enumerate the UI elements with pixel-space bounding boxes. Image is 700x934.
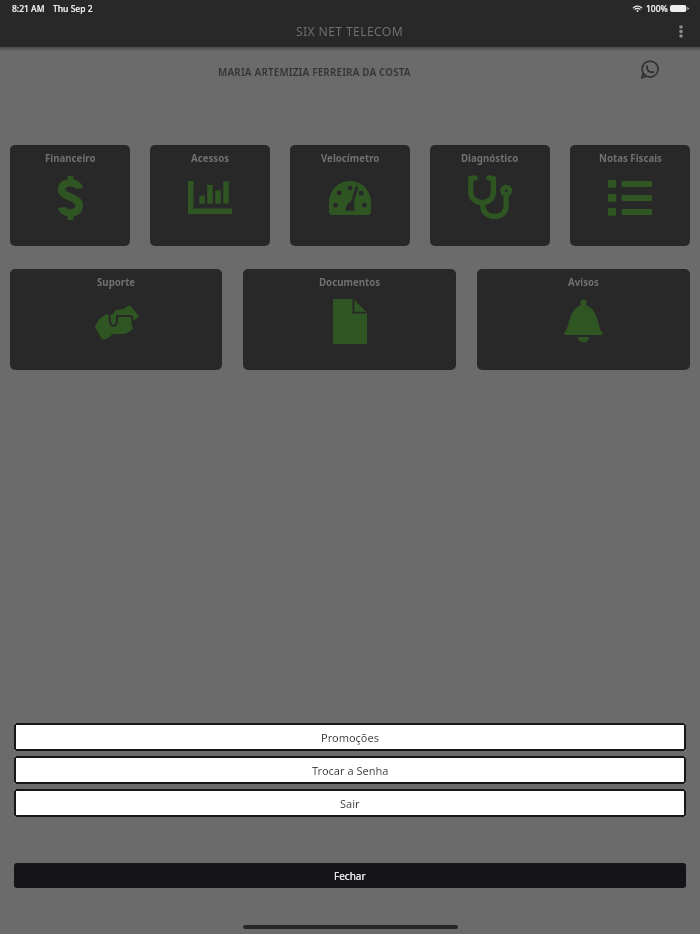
button[interactable]: WhatsApp — [635, 56, 662, 83]
staticText: Suporte — [97, 276, 136, 289]
button[interactable]: Velocímetro — [290, 145, 410, 246]
button[interactable]: More options — [668, 19, 693, 44]
staticText: Acessos — [191, 152, 230, 165]
staticText: Promoções — [321, 730, 379, 745]
staticText: 100% — [646, 3, 668, 15]
staticText: Avisos — [568, 276, 599, 289]
staticText: Documentos — [319, 276, 381, 289]
button[interactable]: Sair — [14, 789, 686, 817]
staticText: 8:21 AM — [12, 3, 45, 15]
button[interactable]: Suporte — [10, 269, 222, 370]
button[interactable]: Documentos — [243, 269, 456, 370]
staticText: Financeiro — [45, 152, 96, 165]
button[interactable]: Avisos — [477, 269, 690, 370]
button[interactable]: Promoções — [14, 723, 686, 751]
button[interactable]: Diagnóstico — [430, 145, 550, 246]
staticText: SIX NET TELECOM — [296, 23, 404, 40]
button[interactable]: Fechar — [14, 863, 686, 888]
staticText: MARIA ARTEMIZIA FERREIRA DA COSTA — [218, 66, 411, 79]
button[interactable]: Notas Fiscais — [570, 145, 690, 246]
staticText: Fechar — [334, 869, 366, 883]
staticText: Trocar a Senha — [312, 763, 389, 778]
staticText: Diagnóstico — [461, 152, 519, 165]
staticText: Thu Sep 2 — [53, 3, 93, 15]
staticText: Notas Fiscais — [599, 152, 662, 165]
button[interactable]: Financeiro — [10, 145, 130, 246]
button[interactable]: Trocar a Senha — [14, 756, 686, 784]
button[interactable]: Acessos — [150, 145, 270, 246]
staticText: Velocímetro — [321, 152, 380, 165]
staticText: Sair — [340, 796, 360, 811]
